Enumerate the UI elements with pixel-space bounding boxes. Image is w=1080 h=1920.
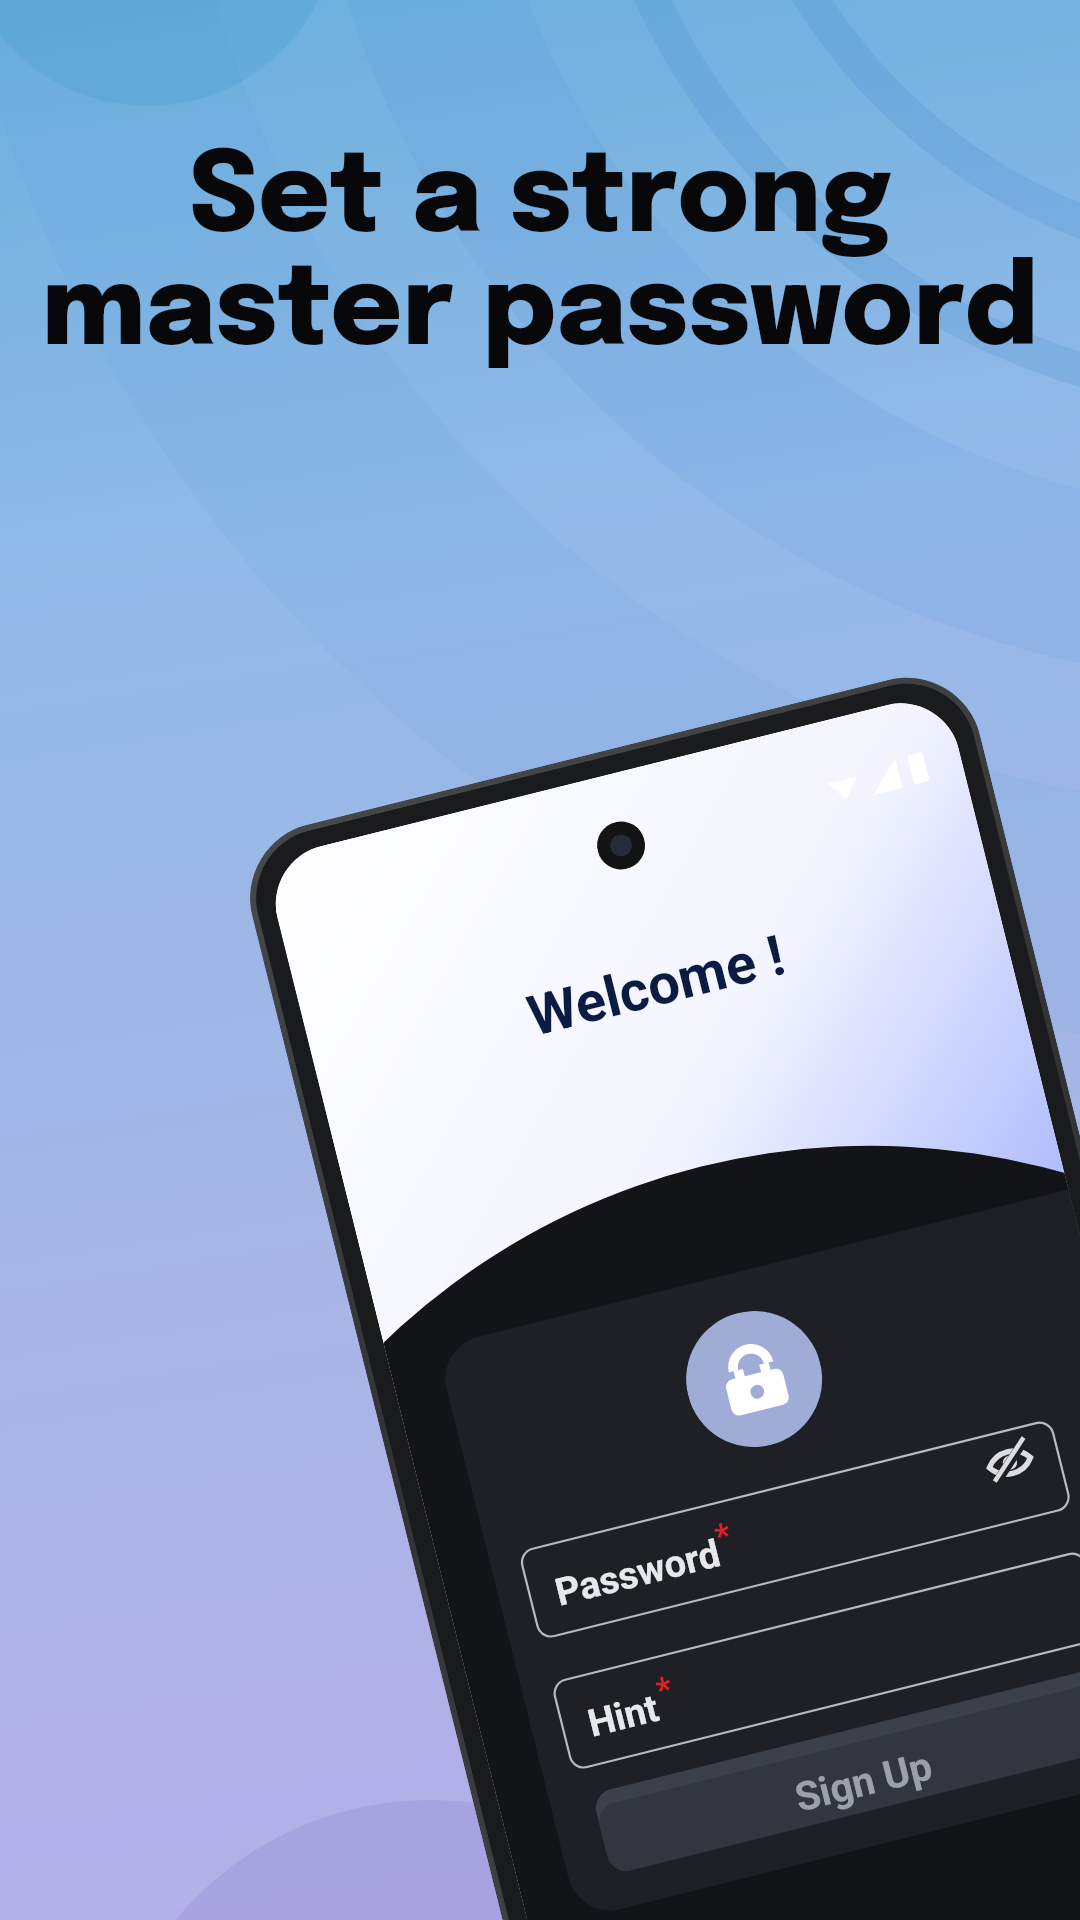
- staticText: Sign Up: [790, 1742, 937, 1822]
- staticText: *: [652, 1668, 677, 1710]
- staticText: Welcome !: [521, 922, 791, 1050]
- button[interactable]: Hint: [552, 1551, 1080, 1770]
- button[interactable]: [592, 1646, 1080, 1869]
- staticText: Hint: [583, 1686, 664, 1747]
- staticText: *: [710, 1514, 736, 1557]
- staticText: Password: [551, 1531, 725, 1616]
- button[interactable]: Toggle password visibility: [982, 1434, 1038, 1490]
- staticText: Set a strong: [188, 144, 892, 257]
- staticText: master password: [41, 257, 1039, 370]
- button[interactable]: Password: [519, 1420, 1071, 1639]
